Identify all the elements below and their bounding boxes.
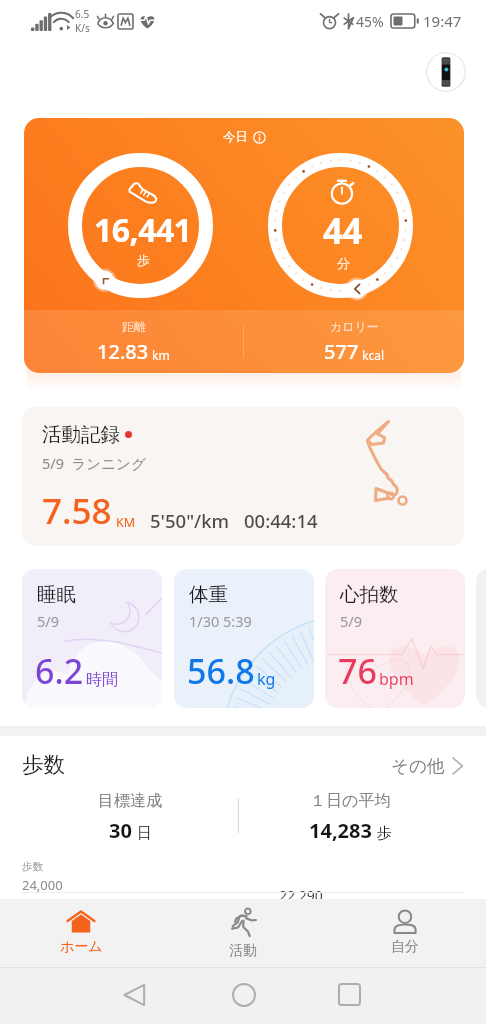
staticText: 7.58 bbox=[42, 487, 112, 535]
staticText: 心拍数 bbox=[340, 582, 399, 607]
staticText: 6.2 bbox=[35, 648, 84, 694]
staticText: 24,000 bbox=[22, 876, 63, 894]
staticText: 30 bbox=[109, 817, 132, 844]
staticText: 5/9 bbox=[340, 611, 362, 631]
staticText: 歩数 bbox=[22, 860, 43, 873]
staticText: 22.290 bbox=[279, 886, 323, 905]
staticText: 5'50"/km bbox=[150, 508, 230, 533]
staticText: 距離 bbox=[122, 319, 146, 334]
staticText: ホーム bbox=[60, 938, 103, 956]
staticText: 1/30 5:39 bbox=[189, 611, 252, 631]
staticText: 体重 bbox=[189, 582, 228, 607]
button[interactable]: Recents bbox=[327, 972, 372, 1017]
staticText: カロリー bbox=[330, 319, 379, 334]
button[interactable]: 心拍数 bbox=[325, 569, 465, 708]
staticText: 睡眠 bbox=[37, 582, 76, 607]
staticText: 56.8 bbox=[187, 648, 255, 694]
button[interactable]: 睡眠 bbox=[22, 569, 162, 708]
button[interactable]: 体重 bbox=[174, 569, 314, 708]
staticText: 歩 bbox=[377, 824, 392, 843]
staticText: kcal bbox=[362, 347, 384, 363]
staticText: 12.83 bbox=[97, 338, 149, 365]
staticText: bpm bbox=[379, 668, 414, 690]
staticText: 44 bbox=[323, 207, 363, 255]
staticText: kg bbox=[257, 668, 276, 690]
staticText: 76 bbox=[338, 648, 377, 694]
staticText: 16,441 bbox=[94, 208, 192, 252]
staticText: １日の平均 bbox=[310, 791, 391, 811]
staticText: 活動 bbox=[229, 942, 257, 960]
staticText: 分 bbox=[337, 255, 350, 271]
staticText: 6.5 bbox=[75, 7, 90, 21]
staticText: K/s bbox=[75, 21, 90, 35]
staticText: 5/9 ランニング bbox=[42, 453, 146, 473]
staticText: 時間 bbox=[86, 670, 118, 690]
button[interactable]: Home bbox=[221, 972, 266, 1017]
staticText: 歩 bbox=[137, 252, 150, 268]
button[interactable]: その他 bbox=[391, 755, 463, 777]
staticText: 活動記録 bbox=[42, 422, 120, 447]
staticText: 歩数 bbox=[22, 751, 65, 778]
staticText: 14,283 bbox=[309, 817, 372, 844]
button[interactable]: 自分 bbox=[324, 899, 486, 967]
staticText: 00:44:14 bbox=[244, 508, 318, 533]
staticText: 577 bbox=[324, 338, 359, 365]
button[interactable]: ホーム bbox=[0, 899, 162, 967]
button[interactable]: Back bbox=[112, 972, 157, 1017]
staticText: 目標達成 bbox=[98, 791, 162, 811]
button[interactable]: 活動 bbox=[162, 899, 324, 967]
staticText: 今日 bbox=[223, 129, 248, 145]
button[interactable]: Device bbox=[424, 50, 468, 94]
staticText: その他 bbox=[391, 755, 445, 777]
button[interactable]: 活動記録 bbox=[22, 407, 464, 546]
staticText: km bbox=[152, 347, 170, 363]
staticText: 5/9 bbox=[37, 611, 59, 631]
staticText: 45% bbox=[356, 12, 384, 31]
staticText: KM bbox=[116, 514, 136, 531]
button[interactable]: 今日 bbox=[24, 118, 464, 373]
staticText: 日 bbox=[137, 824, 152, 843]
staticText: 19:47 bbox=[423, 11, 462, 31]
staticText: 自分 bbox=[391, 938, 419, 956]
